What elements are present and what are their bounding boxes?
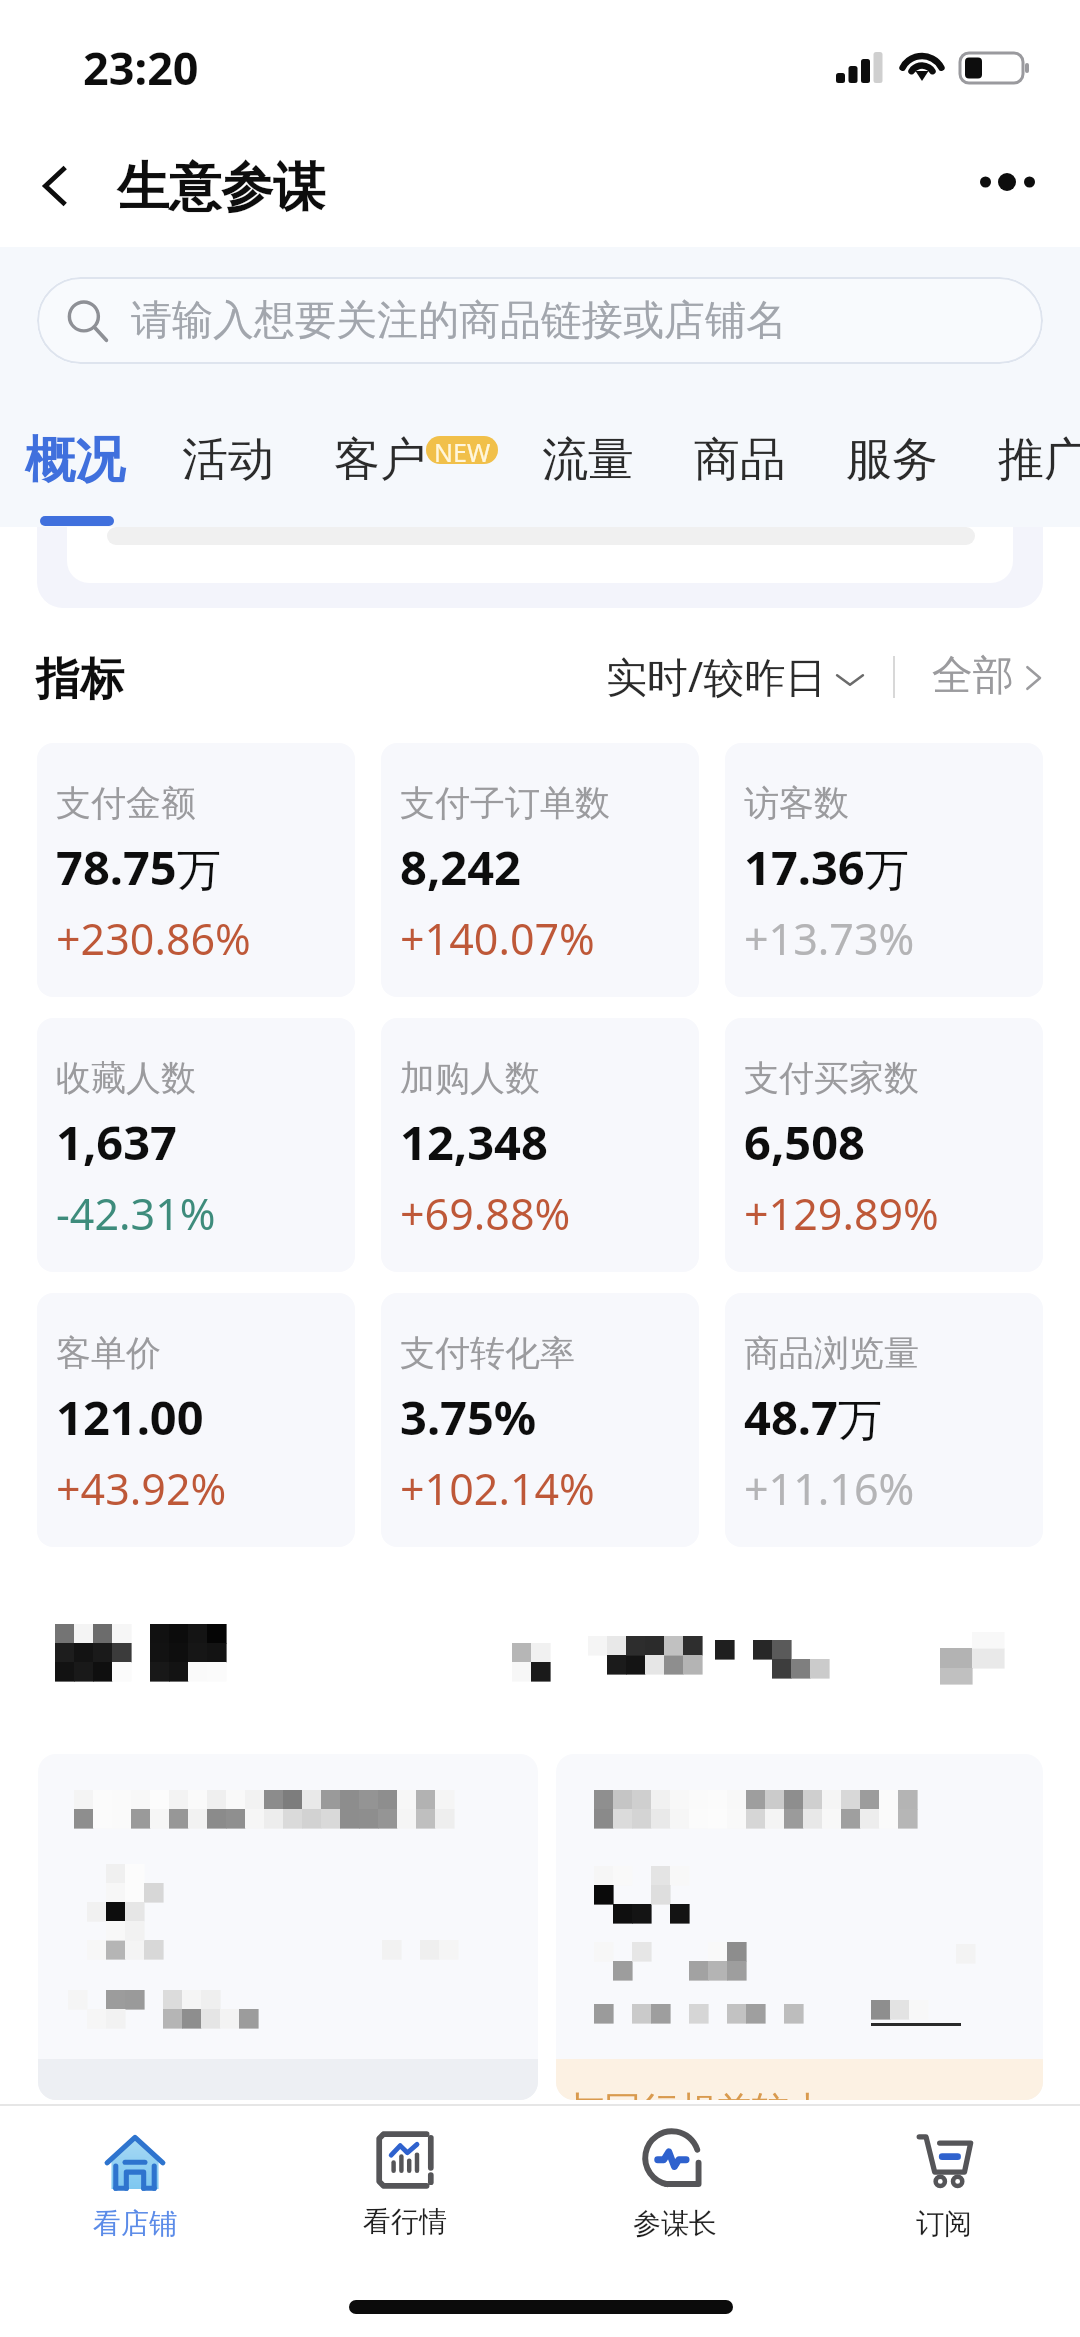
button[interactable]: 推广	[972, 406, 1080, 508]
staticText: 参谋长	[633, 2206, 717, 2241]
button[interactable]: 概况	[0, 406, 151, 508]
staticText: 1,637	[56, 1110, 177, 1174]
staticText: -42.31%	[56, 1184, 216, 1243]
staticText: 3.75%	[400, 1385, 537, 1449]
button[interactable]	[38, 1754, 538, 2100]
staticText: 6,508	[744, 1110, 865, 1174]
staticText: 推广	[998, 431, 1080, 489]
staticText: 活动	[182, 431, 274, 489]
staticText: +102.14%	[400, 1459, 595, 1518]
button[interactable]: 看店铺	[0, 2108, 270, 2258]
staticText: 万	[865, 843, 909, 898]
staticText: 商品	[694, 431, 786, 489]
staticText: 概况	[25, 429, 125, 492]
staticText: 支付子订单数	[400, 781, 610, 825]
button[interactable]: 商品浏览量	[725, 1293, 1043, 1547]
staticText: +43.92%	[56, 1459, 227, 1518]
staticText: +140.07%	[400, 909, 595, 968]
button[interactable]: 加购人数	[381, 1018, 699, 1272]
button[interactable]: 流量	[516, 406, 656, 508]
button[interactable]: 参谋长	[540, 2108, 810, 2258]
staticText: 流量	[542, 431, 634, 489]
button[interactable]: 支付转化率	[381, 1293, 699, 1547]
button[interactable]: 看行情	[270, 2108, 540, 2258]
staticText: 支付金额	[56, 781, 196, 825]
staticText: NEW	[434, 436, 491, 463]
staticText: 支付转化率	[400, 1331, 575, 1375]
staticText: +13.73%	[744, 909, 915, 968]
staticText: 指标	[36, 652, 124, 707]
button[interactable]: 全部	[932, 646, 1049, 710]
staticText: 121.00	[56, 1385, 204, 1449]
button[interactable]: 订阅	[809, 2108, 1079, 2258]
staticText: 商品浏览量	[744, 1331, 919, 1375]
staticText: 48.7	[744, 1385, 838, 1449]
staticText: 订阅	[916, 2206, 972, 2241]
button[interactable]: 商品	[668, 406, 808, 508]
staticText: 12,348	[400, 1110, 548, 1174]
button[interactable]: 支付金额	[37, 743, 355, 997]
button[interactable]: 与同行相差较大	[556, 1754, 1043, 2100]
staticText: 23:20	[83, 37, 199, 98]
staticText: 请输入想要关注的商品链接或店铺名	[131, 295, 787, 347]
button[interactable]: Search products or shops	[37, 277, 1043, 364]
staticText: +129.89%	[744, 1184, 939, 1243]
staticText: +11.16%	[744, 1459, 915, 1518]
staticText: 看行情	[363, 2204, 447, 2239]
staticText: 生意参谋	[117, 155, 325, 221]
button[interactable]: 访客数	[725, 743, 1043, 997]
staticText: 看店铺	[93, 2206, 177, 2241]
button[interactable]: 客户	[308, 406, 448, 508]
staticText: 支付买家数	[744, 1056, 919, 1100]
staticText: 实时/较昨日	[606, 648, 827, 704]
staticText: 8,242	[400, 835, 521, 899]
button[interactable]: Back	[0, 130, 112, 242]
staticText: 万	[177, 843, 221, 898]
button[interactable]: 活动	[156, 406, 296, 508]
staticText: 全部	[932, 650, 1014, 702]
staticText: 客户	[334, 431, 426, 489]
button[interactable]: 收藏人数	[37, 1018, 355, 1272]
button[interactable]: 支付子订单数	[381, 743, 699, 997]
staticText: 收藏人数	[56, 1056, 196, 1100]
staticText: +230.86%	[56, 909, 251, 968]
staticText: 17.36	[744, 835, 865, 899]
button[interactable]: 客单价	[37, 1293, 355, 1547]
staticText: 服务	[846, 431, 938, 489]
staticText: 访客数	[744, 781, 849, 825]
staticText: 加购人数	[400, 1056, 540, 1100]
button[interactable]: More options	[950, 126, 1070, 238]
staticText: 客单价	[56, 1331, 161, 1375]
button[interactable]: 实时/较昨日	[606, 646, 867, 710]
staticText: 万	[838, 1393, 882, 1448]
staticText: 78.75	[56, 835, 177, 899]
staticText: 与同行相差较大	[567, 2087, 826, 2100]
button[interactable]: 服务	[820, 406, 960, 508]
staticText: +69.88%	[400, 1184, 571, 1243]
button[interactable]: 支付买家数	[725, 1018, 1043, 1272]
